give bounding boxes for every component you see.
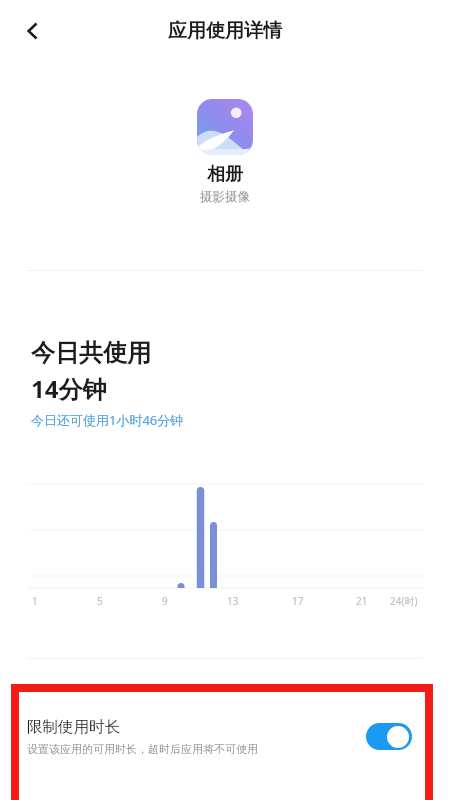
staticText: 相册: [207, 163, 243, 186]
staticText: 今日共使用: [31, 338, 151, 368]
staticText: 21: [356, 594, 368, 608]
staticText: 14分钟: [31, 372, 107, 405]
staticText: 13: [227, 594, 239, 608]
staticText: 应用使用详情: [168, 19, 282, 43]
staticText: 24(时): [390, 594, 418, 608]
button[interactable]: 相册 app icon: [197, 99, 253, 155]
button[interactable]: Back: [10, 8, 56, 54]
staticText: 17: [292, 594, 304, 608]
staticText: 9: [162, 594, 168, 608]
staticText: 1: [32, 594, 38, 608]
staticText: 5: [97, 594, 103, 608]
button[interactable]: 限制使用时长 开关: [366, 723, 412, 750]
staticText: 限制使用时长: [27, 717, 120, 737]
button[interactable]: 限制使用时长: [0, 700, 450, 772]
staticText: 今日还可使用1小时46分钟: [31, 411, 184, 429]
staticText: 设置该应用的可用时长，超时后应用将不可使用: [27, 742, 258, 756]
staticText: 摄影摄像: [200, 189, 250, 205]
